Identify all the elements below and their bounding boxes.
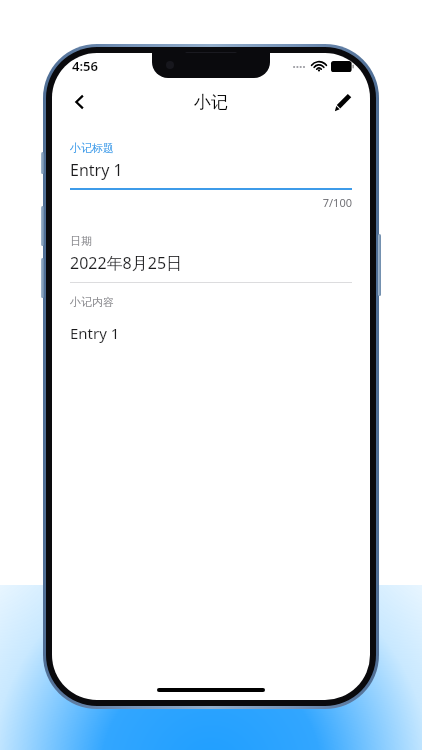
staticText: 小记内容	[70, 295, 114, 309]
button[interactable]: Entry 1	[70, 159, 352, 181]
button[interactable]: Back	[60, 82, 100, 122]
staticText: 小记标题	[70, 141, 114, 155]
button[interactable]: Entry 1	[70, 323, 352, 343]
staticText: Entry 1	[70, 323, 120, 343]
staticText: 4:56	[72, 57, 98, 75]
button[interactable]: Edit	[322, 82, 362, 122]
staticText: 小记	[194, 92, 228, 113]
staticText: 日期	[70, 234, 92, 248]
staticText: Entry 1	[70, 159, 123, 181]
staticText: 7/100	[70, 195, 352, 210]
button[interactable]: 2022年8月25日	[70, 252, 352, 274]
staticText: 2022年8月25日	[70, 252, 183, 274]
